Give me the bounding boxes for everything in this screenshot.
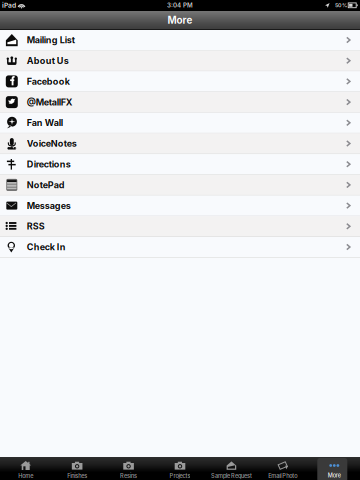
staticText: Facebook — [27, 76, 70, 87]
button[interactable]: VoiceNotes — [0, 133, 360, 154]
button[interactable]: Facebook — [0, 71, 360, 92]
staticText: Projects — [169, 473, 190, 479]
button[interactable]: @MetallFX — [0, 92, 360, 113]
staticText: Mailing List — [27, 34, 75, 45]
button[interactable]: Home — [0, 457, 51, 480]
staticText: @MetallFX — [27, 97, 73, 108]
button[interactable]: Mailing List — [0, 30, 360, 51]
button[interactable]: About Us — [0, 51, 360, 71]
staticText: More — [167, 14, 192, 26]
staticText: About Us — [27, 55, 69, 66]
staticText: Fan Wall — [27, 117, 63, 128]
button[interactable]: Projects — [154, 457, 206, 480]
staticText: Finishes — [67, 473, 87, 479]
staticText: Sample Request — [211, 473, 252, 479]
button[interactable]: Email Photo — [257, 457, 308, 480]
button[interactable]: RSS — [0, 216, 360, 237]
button[interactable]: Check In — [0, 237, 360, 258]
button[interactable]: More — [309, 457, 360, 480]
button[interactable]: Fan Wall — [0, 113, 360, 133]
staticText: NotePad — [27, 179, 65, 190]
staticText: Check In — [27, 241, 66, 252]
staticText: Resins — [120, 473, 137, 479]
staticText: 50% — [335, 2, 347, 9]
button[interactable]: Resins — [103, 457, 154, 480]
staticText: Messages — [27, 200, 71, 211]
staticText: VoiceNotes — [27, 138, 77, 149]
staticText: More — [328, 472, 341, 479]
staticText: Directions — [27, 159, 71, 170]
button[interactable]: Messages — [0, 196, 360, 216]
button[interactable]: Directions — [0, 154, 360, 175]
staticText: iPad — [2, 1, 16, 9]
button[interactable]: Finishes — [51, 457, 103, 480]
staticText: RSS — [27, 221, 45, 232]
button[interactable]: Sample Request — [206, 457, 257, 480]
staticText: 3:04 PM — [167, 2, 193, 9]
button[interactable]: NotePad — [0, 175, 360, 196]
staticText: Email Photo — [268, 473, 297, 479]
staticText: Home — [18, 473, 33, 479]
